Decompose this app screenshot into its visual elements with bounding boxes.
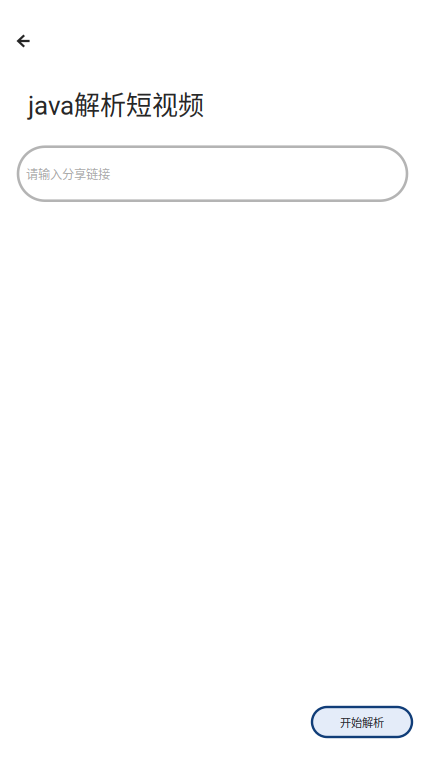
staticText: 开始解析: [340, 714, 384, 730]
button[interactable]: 请输入分享链接: [18, 147, 407, 201]
button[interactable]: Back: [0, 0, 40, 57]
staticText: 请输入分享链接: [26, 165, 110, 183]
button[interactable]: 开始解析: [312, 707, 412, 737]
staticText: java解析短视频: [28, 85, 204, 122]
